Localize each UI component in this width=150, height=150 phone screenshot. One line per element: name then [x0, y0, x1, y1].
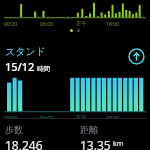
staticText: 距離: [80, 124, 98, 135]
button[interactable]: 00:00: [0, 0, 150, 42]
staticText: 00:00: [4, 20, 18, 27]
staticText: スタンド: [5, 45, 46, 58]
staticText: 時間: [37, 65, 50, 73]
button[interactable]: Increase goal: [128, 48, 145, 65]
staticText: 18,246: [5, 137, 43, 150]
staticText: 13.35: [80, 137, 111, 150]
staticText: km: [113, 139, 124, 149]
staticText: 正午: [76, 20, 87, 27]
button[interactable]: 距離: [75, 119, 150, 150]
staticText: 00:00: [4, 114, 18, 118]
staticText: 正午: [76, 114, 87, 118]
staticText: 18:00: [106, 20, 120, 27]
staticText: 18:00: [106, 114, 120, 118]
staticText: 15/12: [5, 59, 35, 74]
staticText: 06:00: [40, 114, 54, 118]
button[interactable]: スタンド: [0, 42, 150, 118]
staticText: 06:00: [40, 20, 54, 27]
button[interactable]: 歩数: [0, 119, 75, 150]
staticText: 歩数: [5, 124, 23, 135]
